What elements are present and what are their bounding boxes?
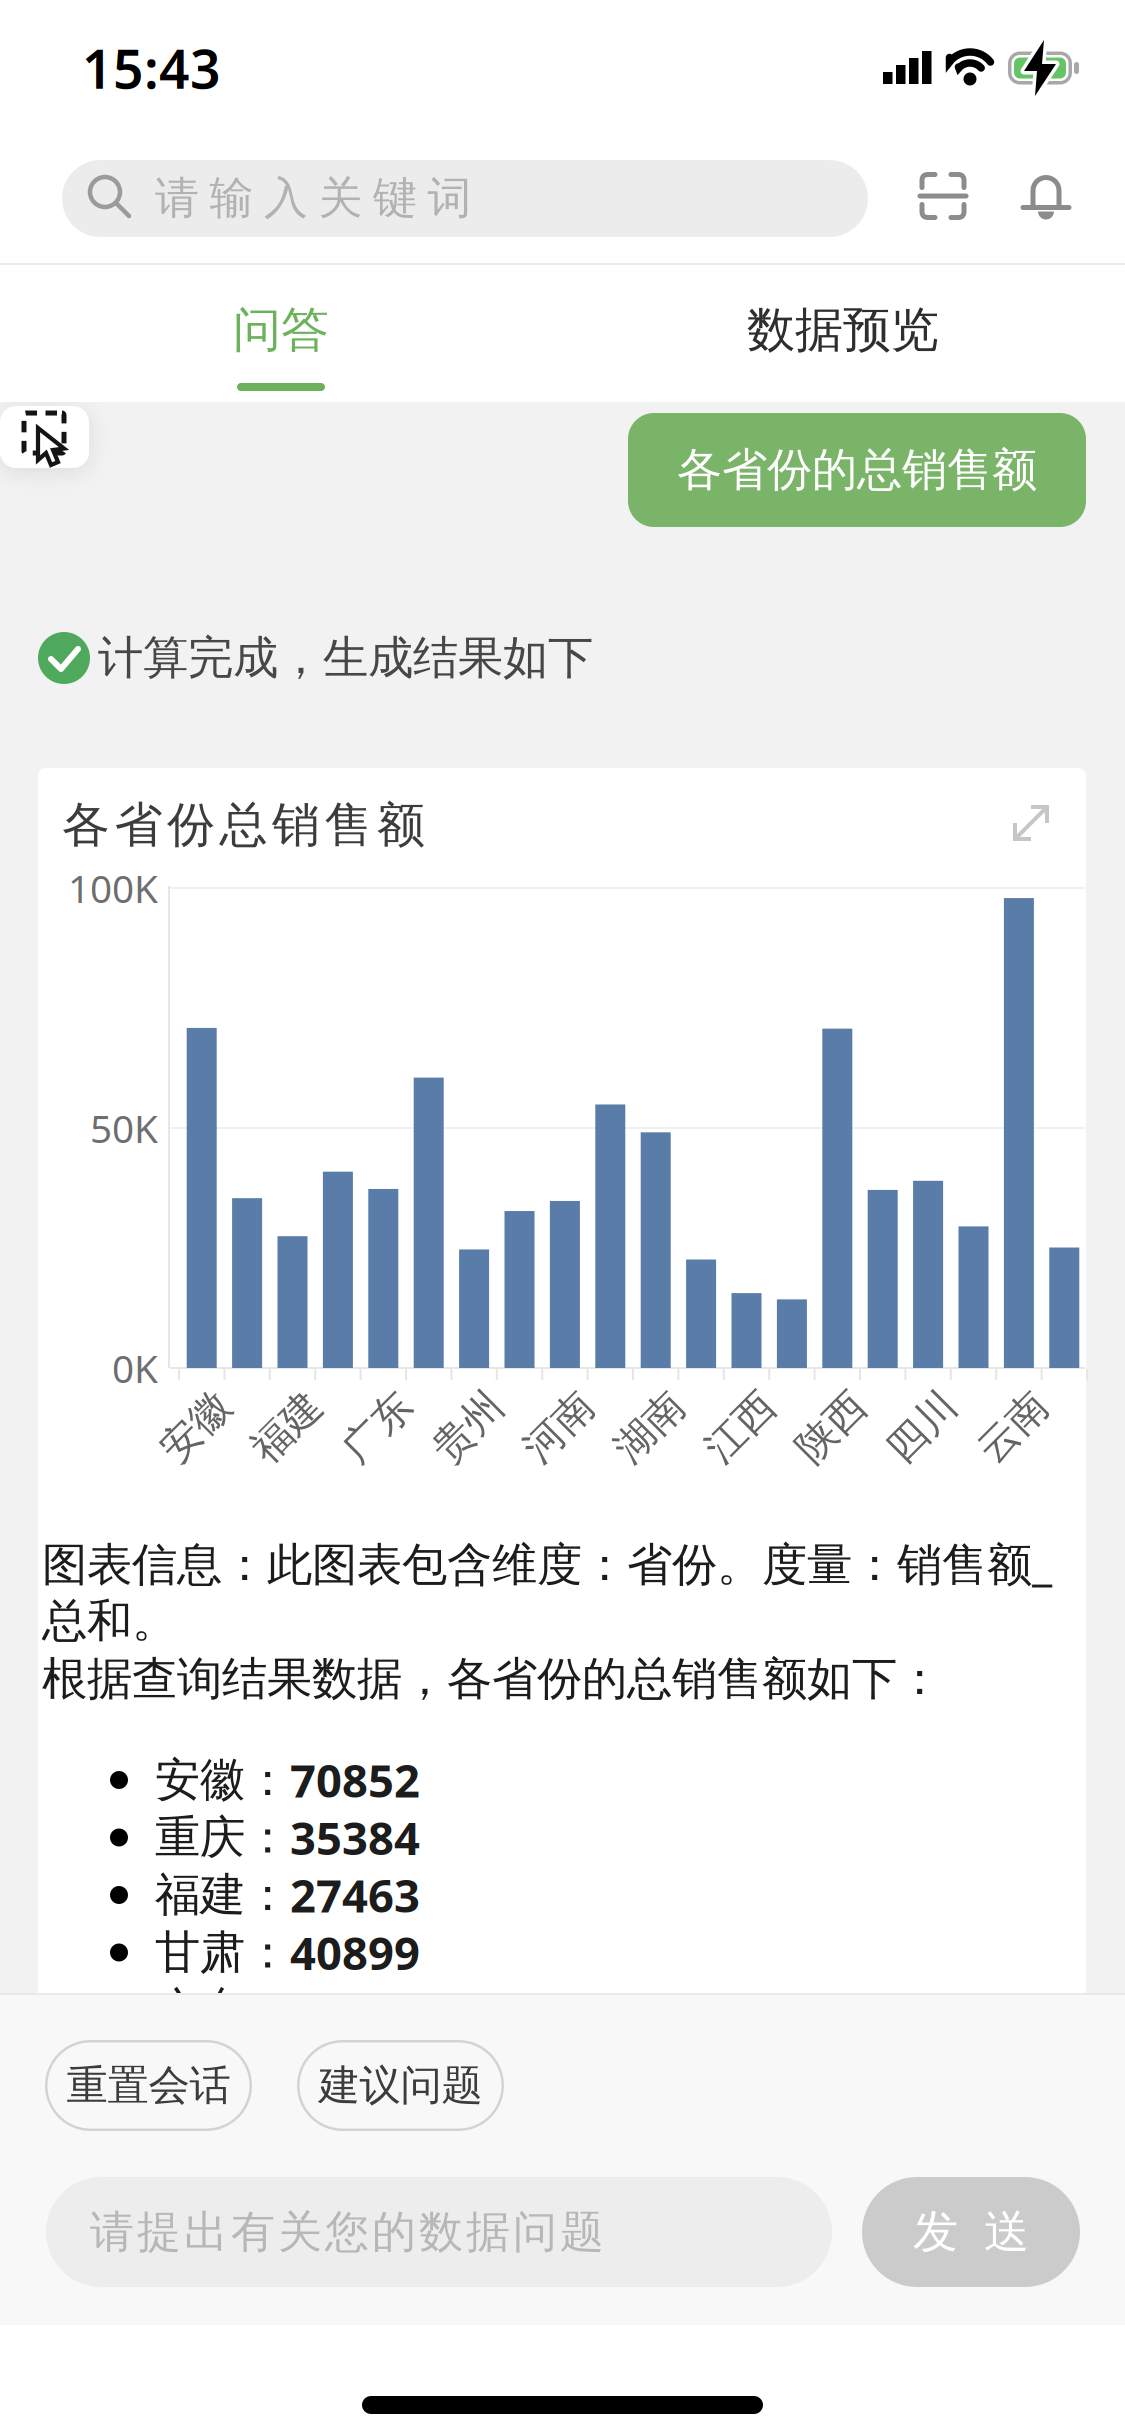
staticText: 请输入关键词 — [155, 171, 471, 225]
staticText: 图表信息：此图表包含维度：省份。度量：销售额_ — [42, 1533, 1052, 1593]
button[interactable]: 问答 — [0, 265, 562, 395]
staticText: 陕西 — [791, 1402, 871, 1451]
staticText: 各省份的总销售额 — [677, 442, 1037, 498]
staticText: 河南 — [519, 1402, 599, 1451]
staticText: 安徽： — [155, 1752, 290, 1808]
staticText: 江西 — [700, 1402, 780, 1451]
staticText: 各省份总销售额 — [62, 795, 425, 854]
staticText: 请提出有关您的数据问题 — [90, 2205, 604, 2259]
staticText: 福建： — [155, 1867, 290, 1923]
staticText: 100K — [68, 862, 158, 914]
staticText: 湖南 — [610, 1402, 690, 1451]
staticText: 0K — [112, 1342, 158, 1394]
staticText: 福建 — [246, 1402, 326, 1451]
button[interactable]: 建议问题 — [297, 2040, 504, 2131]
staticText: 50K — [90, 1102, 158, 1154]
button[interactable]: 放大图表 — [1009, 801, 1053, 845]
button[interactable]: 各省份的总销售额 — [628, 413, 1086, 527]
staticText: 15:43 — [82, 33, 221, 103]
staticText: 甘肃： — [155, 1925, 290, 1980]
button[interactable]: 重置会话 — [45, 2040, 252, 2131]
staticText: 重置会话 — [66, 2060, 230, 2111]
staticText: 问答 — [233, 300, 329, 359]
staticText: 安徽 — [156, 1402, 236, 1451]
staticText: 建议问题 — [318, 2060, 482, 2111]
staticText: 根据查询结果数据，各省份的总销售额如下： — [42, 1651, 942, 1707]
staticText: 35384 — [290, 1807, 420, 1868]
button[interactable]: 通知 — [1012, 163, 1080, 229]
staticText: 重庆： — [155, 1810, 290, 1865]
staticText: 贵州 — [428, 1402, 508, 1451]
staticText: 总和。 — [42, 1593, 177, 1649]
button[interactable]: 框选 — [0, 406, 89, 468]
staticText: 数据预览 — [747, 300, 939, 359]
staticText: 四川 — [882, 1402, 962, 1451]
button[interactable]: 数据预览 — [562, 265, 1124, 395]
staticText: 计算完成，生成结果如下 — [98, 630, 593, 686]
staticText: 40899 — [290, 1922, 420, 1983]
staticText: 广东： — [155, 1982, 290, 2038]
staticText: 37413 — [290, 1980, 420, 2040]
button[interactable]: 请输入关键词 — [62, 160, 868, 237]
staticText: 广东 — [337, 1402, 417, 1451]
staticText: 70852 — [290, 1750, 420, 1810]
staticText: 发 送 — [913, 2204, 1029, 2260]
button[interactable]: 发 送 — [862, 2177, 1080, 2287]
staticText: 云南 — [973, 1402, 1053, 1451]
button[interactable]: 扫一扫 — [910, 162, 978, 230]
button[interactable]: 请提出有关您的数据问题 — [46, 2177, 832, 2287]
staticText: 27463 — [290, 1865, 420, 1925]
